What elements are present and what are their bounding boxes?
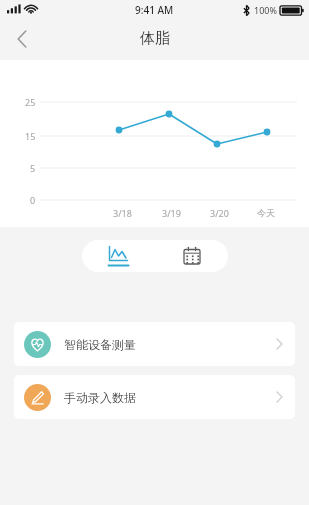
staticText: 今天 <box>257 207 275 218</box>
staticText: 25 <box>25 96 36 108</box>
staticText: 5 <box>30 162 36 174</box>
staticText: 手动录入数据 <box>64 390 136 405</box>
staticText: 体脂 <box>140 29 170 48</box>
button[interactable]: Chart view <box>82 240 155 272</box>
staticText: 智能设备测量 <box>64 337 136 352</box>
staticText: 3/18 <box>113 207 132 219</box>
staticText: 9:41 AM <box>135 3 174 17</box>
staticText: 3/20 <box>210 207 229 219</box>
button[interactable]: Back <box>0 20 44 57</box>
staticText: 15 <box>25 130 36 142</box>
staticText: 0 <box>30 194 36 206</box>
button[interactable]: Calendar view <box>155 240 228 272</box>
staticText: 100% <box>254 4 277 16</box>
button[interactable]: 手动录入数据 <box>14 375 295 419</box>
staticText: 3/19 <box>162 207 181 219</box>
button[interactable]: 智能设备测量 <box>14 322 295 366</box>
